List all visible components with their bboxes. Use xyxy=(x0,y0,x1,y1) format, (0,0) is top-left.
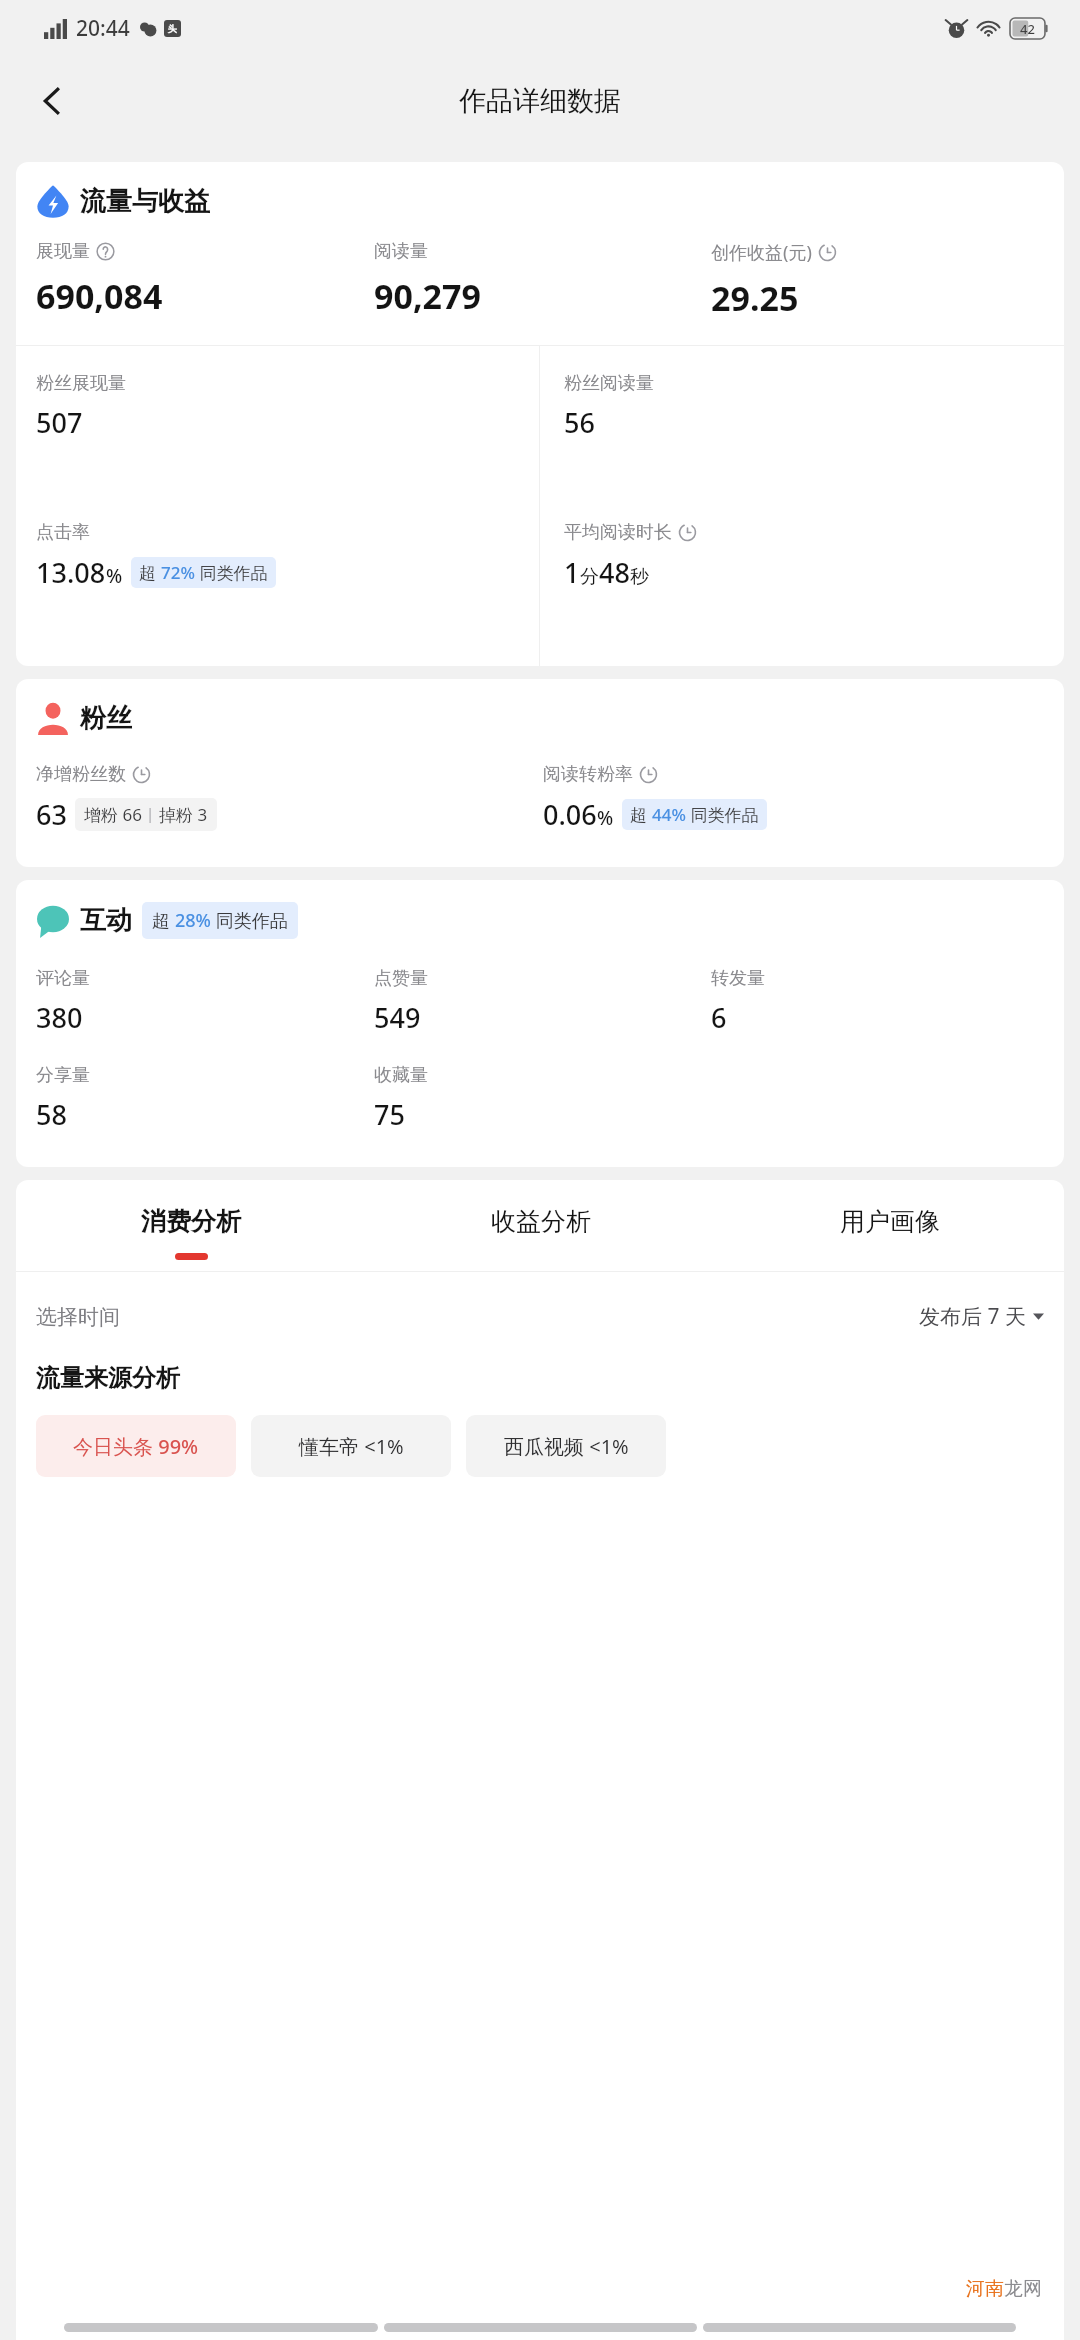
staticText: 收益分析 xyxy=(491,1206,591,1237)
staticText: 1 xyxy=(564,554,580,591)
staticText: 72% xyxy=(161,561,195,584)
staticText: 用户画像 xyxy=(840,1206,940,1237)
button[interactable]: 消费分析 xyxy=(16,1206,366,1271)
staticText: 超 xyxy=(630,803,652,826)
staticText: 超 xyxy=(139,561,161,584)
staticText: | xyxy=(142,803,159,823)
staticText: 流量来源分析 xyxy=(36,1363,180,1393)
staticText: 流量与收益 xyxy=(80,185,210,218)
staticText: 58 xyxy=(36,1096,67,1133)
staticText: 同类作品 xyxy=(195,561,268,584)
button[interactable]: 西瓜视频 <1% xyxy=(466,1415,666,1477)
staticText: 粉丝展现量 xyxy=(36,372,126,395)
staticText: 龙网 xyxy=(1004,2277,1042,2301)
staticText: 380 xyxy=(36,999,83,1036)
staticText: 评论量 xyxy=(36,967,90,990)
staticText: 点赞量 xyxy=(374,967,428,990)
staticText: 6 xyxy=(711,999,727,1036)
staticText: 28% xyxy=(175,908,211,933)
staticText: 秒 xyxy=(630,565,649,589)
staticText: 消费分析 xyxy=(141,1206,241,1237)
staticText: 西瓜视频 <1% xyxy=(504,1433,629,1460)
staticText: 增粉 66 xyxy=(84,803,142,826)
staticText: 42 xyxy=(1020,20,1035,38)
staticText: 净增粉丝数 xyxy=(36,763,126,786)
button[interactable]: 懂车帝 <1% xyxy=(251,1415,451,1477)
staticText: 63 xyxy=(36,796,67,833)
staticText: 掉粉 3 xyxy=(159,803,208,826)
staticText: 阅读转粉率 xyxy=(543,763,633,786)
staticText: 平均阅读时长 xyxy=(564,521,672,544)
button[interactable]: 今日头条 99% xyxy=(36,1415,236,1477)
staticText: 75 xyxy=(374,1096,405,1133)
staticText: 690,084 xyxy=(36,273,163,319)
staticText: 44% xyxy=(652,803,686,826)
staticText: 48 xyxy=(599,554,630,591)
staticText: 选择时间 xyxy=(36,1304,120,1330)
button[interactable]: 用户画像 xyxy=(715,1206,1064,1271)
staticText: 转发量 xyxy=(711,967,765,990)
button[interactable]: 发布后 7 天 xyxy=(919,1302,1044,1331)
staticText: % xyxy=(106,563,123,589)
staticText: 发布后 7 天 xyxy=(919,1302,1026,1331)
staticText: 549 xyxy=(374,999,421,1036)
staticText: 分享量 xyxy=(36,1064,90,1087)
staticText: 粉丝阅读量 xyxy=(564,372,654,395)
staticText: 同类作品 xyxy=(686,803,759,826)
button[interactable]: Back xyxy=(20,69,84,133)
staticText: 分 xyxy=(580,565,599,589)
staticText: 0.06 xyxy=(543,796,597,833)
staticText: 90,279 xyxy=(374,273,481,319)
staticText: 507 xyxy=(36,404,83,441)
staticText: 阅读量 xyxy=(374,240,428,263)
staticText: 20:44 xyxy=(76,14,130,43)
staticText: 同类作品 xyxy=(211,908,288,933)
button[interactable]: 粉丝 xyxy=(16,679,1064,867)
button[interactable]: 流量与收益 xyxy=(16,162,1064,666)
staticText: 今日头条 99% xyxy=(73,1433,199,1460)
staticText: 收藏量 xyxy=(374,1064,428,1087)
staticText: 懂车帝 <1% xyxy=(299,1433,404,1460)
staticText: 互动 xyxy=(80,904,132,937)
staticText: 粉丝 xyxy=(80,702,132,735)
staticText: 56 xyxy=(564,404,595,441)
button[interactable]: 收益分析 xyxy=(366,1206,715,1271)
staticText: 河南 xyxy=(966,2277,1004,2301)
button[interactable]: 互动 xyxy=(16,880,1064,1167)
staticText: 头 xyxy=(168,23,177,34)
staticText: 创作收益(元) xyxy=(711,240,812,265)
staticText: % xyxy=(597,805,614,831)
staticText: 作品详细数据 xyxy=(459,84,621,118)
staticText: 点击率 xyxy=(36,521,90,544)
staticText: 超 xyxy=(152,908,175,933)
staticText: 29.25 xyxy=(711,275,799,321)
staticText: 展现量 xyxy=(36,240,90,263)
staticText: 13.08 xyxy=(36,554,106,591)
